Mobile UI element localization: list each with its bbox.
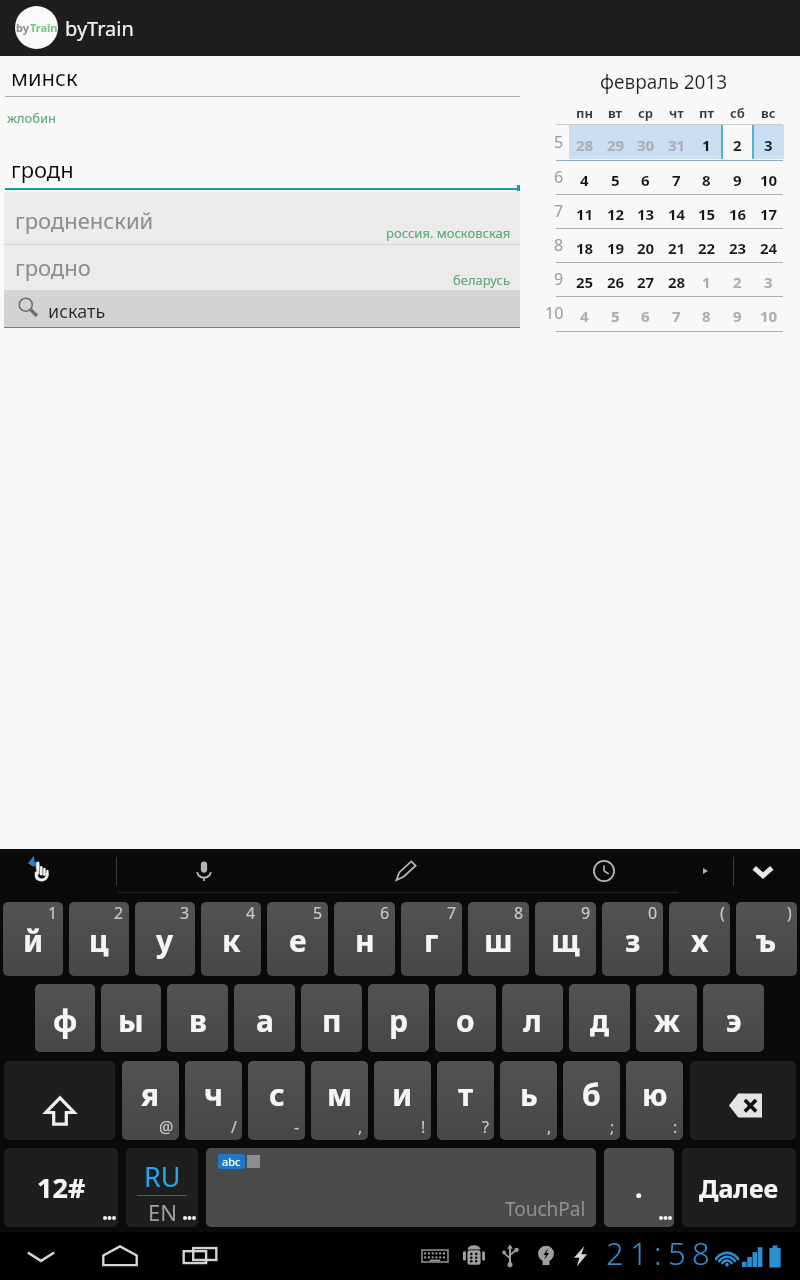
- button[interactable]: 12#: [4, 1148, 118, 1227]
- button[interactable]: 9: [535, 902, 596, 976]
- staticText: @: [159, 1116, 174, 1138]
- button[interactable]: Hide keyboard: [735, 849, 790, 893]
- button[interactable]: 0: [602, 902, 663, 976]
- button[interactable]: 6: [334, 902, 395, 976]
- button[interactable]: 4: [201, 902, 261, 976]
- button[interactable]: .: [604, 1148, 674, 1227]
- button[interactable]: гродненский: [4, 192, 520, 244]
- staticText: 1: [702, 272, 711, 292]
- button[interactable]: Backspace: [690, 1061, 796, 1140]
- staticText: с: [269, 1074, 285, 1115]
- button[interactable]: 2: [69, 902, 129, 976]
- button[interactable]: (: [669, 902, 730, 976]
- button[interactable]: п: [301, 984, 362, 1052]
- staticText: 2: [733, 135, 742, 155]
- button[interactable]: Далее: [682, 1148, 796, 1227]
- button[interactable]: Space: [206, 1148, 596, 1227]
- staticText: 2: [114, 902, 124, 924]
- button[interactable]: More options: [685, 849, 725, 893]
- staticText: ,: [547, 1116, 552, 1138]
- button[interactable]: ;: [563, 1061, 620, 1140]
- staticText: а: [256, 1000, 274, 1041]
- staticText: (: [720, 902, 725, 924]
- button[interactable]: 7: [401, 902, 462, 976]
- staticText: д: [590, 1000, 610, 1041]
- staticText: ?: [482, 1116, 489, 1138]
- button[interactable]: Back: [18, 1241, 64, 1271]
- button[interactable]: л: [502, 984, 563, 1052]
- staticText: 31: [668, 135, 686, 155]
- button[interactable]: Settings: [576, 849, 631, 893]
- button[interactable]: Handwriting mode: [12, 849, 67, 893]
- button[interactable]: гродн: [11, 154, 74, 184]
- staticText: 17: [760, 204, 778, 224]
- staticText: 9: [581, 902, 591, 924]
- staticText: й: [23, 920, 44, 961]
- button[interactable]: ф: [35, 984, 95, 1052]
- staticText: 29: [607, 135, 625, 155]
- staticText: 18: [576, 238, 594, 258]
- staticText: 26: [607, 272, 625, 292]
- staticText: TouchPal: [505, 1196, 586, 1222]
- staticText: byTrain: [65, 15, 134, 42]
- button[interactable]: 5: [267, 902, 328, 976]
- staticText: !: [421, 1116, 426, 1138]
- button[interactable]: Recent apps: [177, 1241, 223, 1271]
- staticText: э: [726, 1000, 742, 1041]
- button[interactable]: ): [736, 902, 797, 976]
- button[interactable]: !: [374, 1061, 431, 1140]
- button[interactable]: :: [626, 1061, 683, 1140]
- button[interactable]: Handwrite: [378, 849, 433, 893]
- button[interactable]: -: [248, 1061, 305, 1140]
- button[interactable]: 3: [135, 902, 195, 976]
- button[interactable]: ж: [636, 984, 697, 1052]
- button[interactable]: гродно: [4, 245, 520, 290]
- staticText: 3: [180, 902, 190, 924]
- button[interactable]: ы: [101, 984, 161, 1052]
- staticText: 7: [672, 306, 681, 326]
- staticText: 6: [641, 170, 650, 190]
- button[interactable]: 8: [468, 902, 529, 976]
- staticText: 27: [637, 272, 655, 292]
- button[interactable]: /: [185, 1061, 242, 1140]
- button[interactable]: Home: [97, 1241, 143, 1271]
- staticText: ср: [638, 104, 654, 122]
- staticText: в: [189, 1000, 207, 1041]
- staticText: 0: [648, 902, 658, 924]
- staticText: искать: [48, 299, 106, 324]
- staticText: 5: [611, 306, 620, 326]
- staticText: пн: [576, 104, 593, 122]
- button[interactable]: ?: [437, 1061, 494, 1140]
- staticText: 19: [607, 238, 625, 258]
- button[interactable]: минск: [11, 62, 78, 92]
- staticText: февраль 2013: [600, 69, 728, 95]
- button[interactable]: Shift: [4, 1061, 115, 1140]
- staticText: г: [424, 920, 439, 961]
- staticText: ц: [89, 920, 109, 961]
- staticText: х: [691, 920, 709, 961]
- staticText: 5: [313, 902, 323, 924]
- staticText: /: [231, 1116, 237, 1138]
- staticText: 6: [380, 902, 390, 924]
- staticText: к: [222, 920, 241, 961]
- button[interactable]: 1: [3, 902, 63, 976]
- button[interactable]: ,: [311, 1061, 368, 1140]
- staticText: RU: [144, 1158, 181, 1195]
- button[interactable]: ,: [500, 1061, 557, 1140]
- staticText: сб: [730, 104, 745, 122]
- staticText: пт: [699, 104, 715, 122]
- button[interactable]: д: [569, 984, 630, 1052]
- button[interactable]: в: [167, 984, 228, 1052]
- staticText: о: [456, 1000, 475, 1041]
- button[interactable]: @: [122, 1061, 179, 1140]
- button[interactable]: а: [234, 984, 295, 1052]
- button[interactable]: Switch language: [126, 1148, 198, 1227]
- button[interactable]: о: [435, 984, 496, 1052]
- staticText: гродненский: [15, 205, 154, 235]
- staticText: 12: [607, 204, 625, 224]
- button[interactable]: Voice input: [176, 849, 231, 893]
- button[interactable]: э: [703, 984, 764, 1052]
- button[interactable]: искать: [4, 290, 520, 327]
- staticText: ы: [118, 1000, 144, 1041]
- button[interactable]: р: [368, 984, 429, 1052]
